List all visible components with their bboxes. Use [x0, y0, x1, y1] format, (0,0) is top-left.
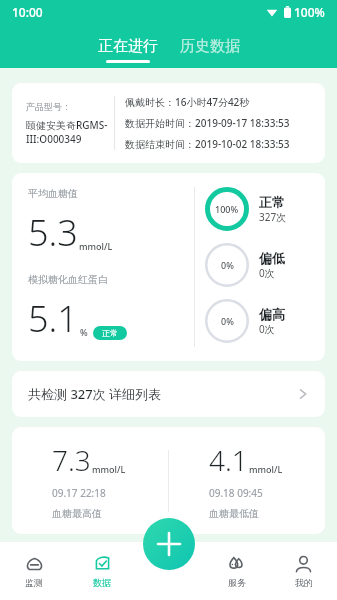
staticText: 佩戴时长：16小时47分42秒 [125, 95, 250, 109]
staticText: 正常 [259, 194, 285, 210]
staticText: 0% [221, 315, 234, 327]
staticText: 服务 [228, 577, 246, 588]
staticText: 监测 [25, 577, 43, 588]
staticText: 327次 [259, 210, 287, 224]
staticText: 正在进行 [98, 37, 158, 56]
button[interactable]: 我的 [270, 542, 337, 600]
staticText: 正常 [102, 328, 118, 338]
button[interactable]: Add record [143, 518, 195, 570]
staticText: 数据结束时间：2019-10-02 18:33:53 [125, 137, 290, 151]
staticText: 4.1 [209, 441, 248, 479]
staticText: 0次 [259, 266, 275, 280]
staticText: 0次 [259, 322, 275, 336]
staticText: 10:00 [12, 4, 43, 20]
staticText: mmol/L [79, 240, 113, 252]
staticText: 5.3 [28, 208, 78, 257]
button[interactable]: 平均血糖值 [12, 173, 325, 361]
staticText: 数据开始时间：2019-09-17 18:33:53 [125, 116, 290, 130]
staticText: 血糖最低值 [209, 507, 259, 520]
staticText: 09.17 22:18 [52, 486, 106, 500]
staticText: mmol/L [92, 463, 126, 475]
staticText: 100% [215, 203, 239, 215]
staticText: 7.3 [52, 441, 91, 479]
staticText: 共检测 327次 详细列表 [28, 385, 162, 403]
button[interactable]: 监测 [0, 542, 68, 600]
button[interactable]: 数据 [68, 542, 136, 600]
staticText: 5.1 [28, 294, 78, 343]
staticText: 历史数据 [180, 37, 240, 56]
staticText: 偏低 [259, 250, 285, 266]
staticText: 平均血糖值 [28, 187, 78, 200]
staticText: 100% [294, 4, 325, 20]
staticText: 09.18 09:45 [209, 486, 263, 500]
staticText: 0% [221, 259, 234, 271]
staticText: 偏高 [259, 306, 285, 322]
button[interactable]: 7.3 [12, 427, 325, 534]
staticText: 我的 [295, 577, 313, 588]
button[interactable]: 历史数据 [176, 37, 244, 68]
staticText: 数据 [93, 577, 111, 588]
staticText: 产品型号： [26, 101, 71, 112]
button[interactable]: 正在进行 [94, 37, 162, 68]
staticText: 血糖最高值 [52, 507, 102, 520]
staticText: % [80, 326, 88, 338]
button[interactable]: 共检测 327次 详细列表 [12, 371, 325, 417]
button[interactable]: 产品型号： [12, 83, 325, 163]
staticText: 颐健安美奇RGMS-III:O000349 [26, 118, 114, 146]
button[interactable]: 服务 [203, 542, 270, 600]
staticText: mmol/L [249, 463, 283, 475]
staticText: 模拟糖化血红蛋白 [28, 273, 108, 286]
